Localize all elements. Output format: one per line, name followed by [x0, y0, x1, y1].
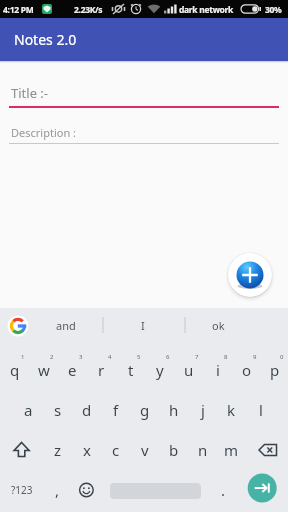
button[interactable]: z — [43, 430, 72, 470]
staticText: Description : — [11, 125, 76, 140]
staticText: v — [141, 440, 149, 460]
button[interactable]: ?123 — [0, 470, 43, 510]
button[interactable]: , — [43, 470, 72, 510]
staticText: 7 — [195, 353, 199, 361]
staticText: I — [141, 318, 145, 333]
button[interactable]: t — [116, 350, 145, 390]
button[interactable]: w — [29, 350, 58, 390]
button[interactable] — [0, 430, 43, 470]
staticText: 2.23K/s — [74, 4, 103, 16]
button[interactable]: x — [72, 430, 101, 470]
staticText: Notes 2.0 — [14, 30, 77, 49]
staticText: l — [259, 400, 263, 420]
staticText: ?123 — [11, 483, 33, 497]
button[interactable]: n — [188, 430, 217, 470]
staticText: o — [242, 360, 252, 380]
staticText: x — [83, 440, 91, 460]
staticText: u — [184, 360, 194, 380]
staticText: t — [128, 360, 134, 380]
staticText: and — [56, 318, 76, 333]
button[interactable]: l — [246, 390, 275, 430]
staticText: f — [113, 400, 119, 420]
staticText: dark network — [179, 4, 234, 16]
button[interactable]: q — [0, 350, 29, 390]
staticText: 3 — [79, 353, 83, 361]
staticText: w — [38, 360, 50, 380]
button[interactable]: k — [217, 390, 246, 430]
staticText: m — [224, 440, 239, 460]
button[interactable]: e — [58, 350, 87, 390]
staticText: 5 — [137, 353, 141, 361]
staticText: 1 — [21, 353, 25, 361]
button[interactable]: s — [43, 390, 72, 430]
button[interactable]: v — [130, 430, 159, 470]
button[interactable]: I — [113, 308, 173, 342]
button[interactable]: y — [145, 350, 174, 390]
button[interactable]: c — [101, 430, 130, 470]
button[interactable]: m — [217, 430, 246, 470]
button[interactable]: ok — [188, 308, 248, 342]
staticText: , — [55, 480, 60, 500]
staticText: r — [98, 360, 105, 380]
staticText: h — [169, 400, 179, 420]
staticText: . — [221, 480, 226, 500]
button[interactable]: j — [188, 390, 217, 430]
button[interactable]: b — [159, 430, 188, 470]
button[interactable] — [246, 430, 288, 470]
button[interactable] — [101, 470, 209, 510]
staticText: e — [68, 360, 77, 380]
button[interactable] — [228, 253, 272, 297]
staticText: z — [54, 440, 62, 460]
button[interactable]: d — [72, 390, 101, 430]
staticText: 2 — [50, 353, 54, 361]
button[interactable]: h — [159, 390, 188, 430]
staticText: a — [24, 400, 33, 420]
staticText: 0 — [280, 353, 284, 361]
button[interactable] — [72, 470, 101, 510]
staticText: s — [54, 400, 62, 420]
button[interactable]: u — [174, 350, 203, 390]
staticText: b — [169, 440, 179, 460]
staticText: 4 — [108, 353, 112, 361]
button[interactable]: g — [130, 390, 159, 430]
staticText: p — [270, 360, 280, 380]
staticText: Title :- — [11, 84, 49, 102]
staticText: 8 — [224, 353, 228, 361]
staticText: j — [201, 400, 205, 420]
button[interactable]: Description : — [9, 125, 279, 144]
button[interactable]: . — [209, 470, 238, 510]
staticText: 30% — [265, 4, 282, 16]
button[interactable]: p — [261, 350, 288, 390]
button[interactable]: i — [203, 350, 232, 390]
button[interactable]: Title :- — [9, 84, 279, 108]
staticText: k — [227, 400, 236, 420]
staticText: c — [112, 440, 120, 460]
staticText: n — [198, 440, 208, 460]
button[interactable]: r — [87, 350, 116, 390]
button[interactable] — [238, 470, 288, 510]
staticText: y — [156, 360, 164, 380]
staticText: 6 — [166, 353, 170, 361]
staticText: i — [216, 360, 220, 380]
staticText: q — [10, 360, 20, 380]
staticText: ok — [212, 318, 225, 333]
staticText: g — [140, 400, 150, 420]
staticText: d — [82, 400, 92, 420]
button[interactable]: f — [101, 390, 130, 430]
staticText: 9 — [253, 353, 257, 361]
button[interactable]: o — [232, 350, 261, 390]
button[interactable]: a — [14, 390, 43, 430]
staticText: 4:12 PM — [3, 4, 34, 16]
button[interactable]: and — [36, 308, 96, 342]
